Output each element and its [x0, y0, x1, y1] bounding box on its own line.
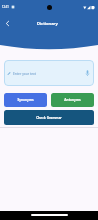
button[interactable]: Back	[1, 17, 14, 30]
button[interactable]: Enter your text	[4, 60, 94, 86]
staticText: Check Grammar	[36, 116, 62, 120]
button[interactable]: Antonyms	[51, 93, 94, 107]
staticText: Antonyms	[64, 98, 81, 102]
staticText: 12:31	[2, 5, 9, 9]
button[interactable]: Synonyms	[4, 93, 47, 107]
staticText: Enter your text	[13, 71, 36, 75]
button[interactable]: Check Grammar	[4, 110, 94, 125]
staticText: Synonyms	[17, 98, 34, 102]
button[interactable]: Voice input	[81, 67, 93, 79]
staticText: Dictionary	[37, 21, 58, 26]
